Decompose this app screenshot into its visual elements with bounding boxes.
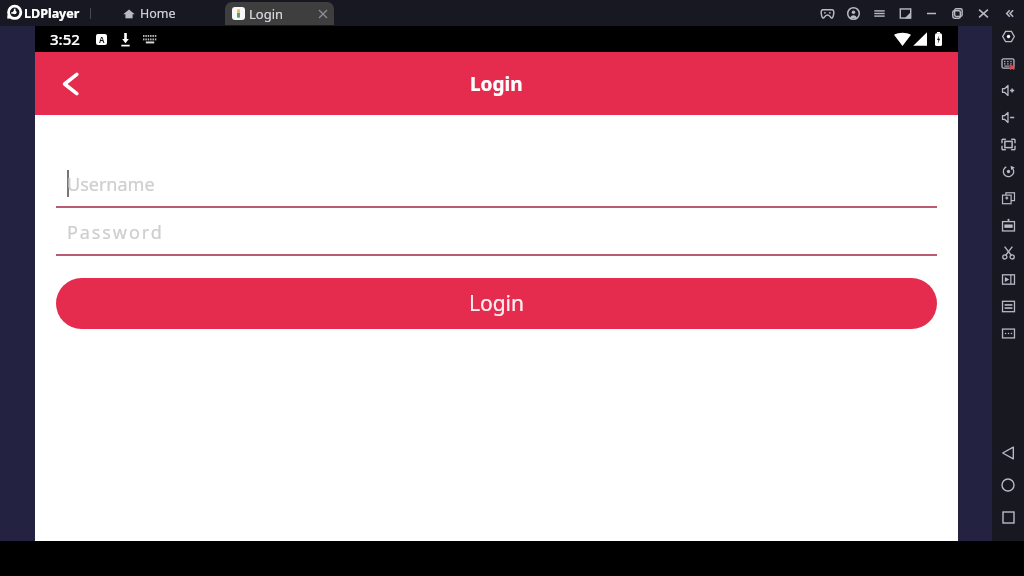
button[interactable]: Login bbox=[56, 278, 937, 329]
button[interactable]: Hide keyboard bbox=[992, 50, 1024, 77]
button[interactable]: Home bbox=[123, 5, 176, 22]
staticText: A bbox=[99, 34, 105, 45]
button[interactable]: Volume down bbox=[992, 104, 1024, 131]
button[interactable]: Close bbox=[970, 0, 996, 26]
button[interactable]: Back bbox=[47, 61, 93, 107]
button[interactable]: Close tab bbox=[315, 6, 331, 22]
button[interactable]: New instance bbox=[992, 185, 1024, 212]
button[interactable]: Gamepad bbox=[814, 0, 840, 26]
button[interactable]: Auto rotate bbox=[992, 158, 1024, 185]
staticText: Home bbox=[140, 5, 176, 22]
staticText: Username bbox=[67, 172, 155, 197]
button[interactable]: Open window bbox=[892, 0, 918, 26]
button[interactable]: Volume up bbox=[992, 77, 1024, 104]
button[interactable]: Location bbox=[992, 23, 1024, 50]
button[interactable]: Record bbox=[992, 266, 1024, 293]
button[interactable]: Password bbox=[56, 218, 937, 256]
staticText: Password bbox=[67, 220, 164, 245]
button[interactable]: Login bbox=[225, 2, 334, 25]
staticText: Login bbox=[470, 71, 523, 97]
button[interactable]: Recents bbox=[992, 501, 1024, 533]
button[interactable]: Cut bbox=[992, 239, 1024, 266]
button[interactable]: Home bbox=[992, 469, 1024, 501]
button[interactable]: Username bbox=[56, 170, 937, 208]
button[interactable]: Minimize bbox=[918, 0, 944, 26]
button[interactable]: Menu bbox=[866, 0, 892, 26]
button[interactable]: More bbox=[992, 320, 1024, 347]
button[interactable]: Sync bbox=[992, 293, 1024, 320]
staticText: LDPlayer bbox=[24, 5, 80, 22]
staticText: 3:52 bbox=[50, 29, 80, 49]
button[interactable]: Maximize bbox=[944, 0, 970, 26]
button[interactable]: Fullscreen bbox=[992, 131, 1024, 158]
button[interactable]: Back bbox=[992, 437, 1024, 469]
button[interactable]: Account bbox=[840, 0, 866, 26]
button[interactable]: Install APK bbox=[992, 212, 1024, 239]
staticText: Login bbox=[249, 5, 284, 23]
button[interactable]: Collapse bbox=[996, 0, 1022, 26]
staticText: Login bbox=[469, 289, 525, 318]
